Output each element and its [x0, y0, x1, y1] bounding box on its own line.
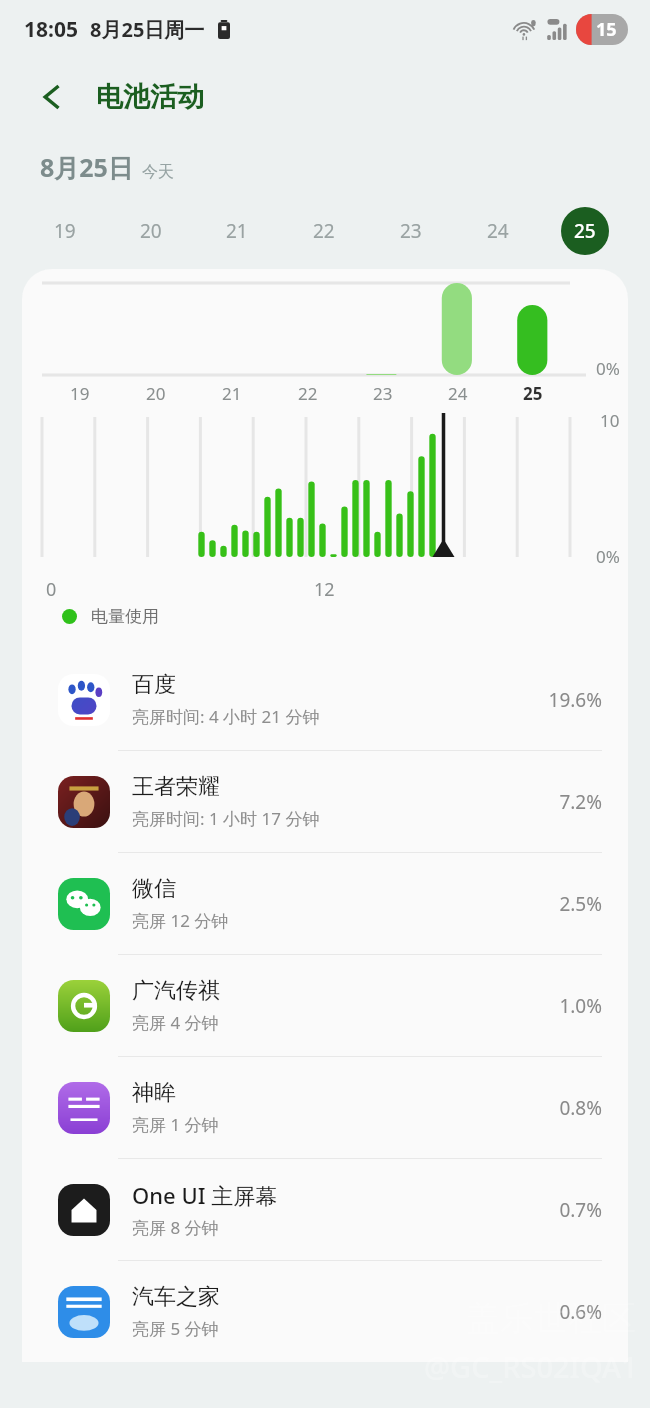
staticText: 21 — [222, 382, 242, 405]
staticText: 18:05 — [24, 15, 78, 44]
staticText: 22 — [298, 382, 318, 405]
staticText: 亮屏 1 分钟 — [132, 1113, 219, 1136]
staticText: 百度 — [132, 671, 176, 699]
staticText: 20 — [140, 218, 162, 244]
button[interactable]: 24 — [454, 204, 541, 258]
staticText: 0.7% — [559, 1197, 602, 1223]
staticText: 10 — [600, 409, 620, 432]
staticText: 电量使用 — [91, 606, 159, 627]
staticText: 广汽传祺 — [132, 977, 220, 1005]
staticText: 亮屏 5 分钟 — [132, 1317, 219, 1340]
button[interactable]: 广汽传祺 — [22, 955, 628, 1056]
staticText: 19.6% — [548, 687, 602, 713]
button[interactable]: 20 — [108, 204, 194, 258]
staticText: 20 — [146, 382, 166, 405]
button[interactable]: 汽车之家 — [22, 1261, 628, 1362]
staticText: 0.8% — [559, 1095, 602, 1121]
button[interactable]: 21 — [194, 204, 280, 258]
button[interactable]: 微信 — [22, 853, 628, 954]
staticText: 亮屏 8 分钟 — [132, 1216, 219, 1239]
staticText: 电池活动 — [96, 80, 204, 114]
staticText: 24 — [487, 218, 509, 244]
staticText: 王者荣耀 — [132, 773, 220, 801]
staticText: 25 — [523, 382, 543, 405]
staticText: 25 — [574, 218, 596, 244]
staticText: 1.0% — [559, 993, 602, 1019]
staticText: 亮屏 4 分钟 — [132, 1011, 219, 1034]
staticText: 12 — [314, 577, 335, 602]
staticText: 0% — [596, 545, 620, 568]
staticText: 汽车之家 — [132, 1283, 220, 1311]
staticText: 亮屏时间: 1 小时 17 分钟 — [132, 807, 320, 830]
staticText: 24 — [448, 382, 468, 405]
staticText: 7.2% — [559, 789, 602, 815]
button[interactable]: 25 — [541, 204, 628, 258]
staticText: One UI 主屏幕 — [132, 1180, 278, 1210]
staticText: 19 — [70, 382, 90, 405]
staticText: 0.6% — [559, 1299, 602, 1325]
staticText: 15 — [596, 17, 617, 42]
button[interactable]: Back — [30, 74, 76, 120]
staticText: 2.5% — [559, 891, 602, 917]
staticText: 23 — [373, 382, 393, 405]
button[interactable]: 22 — [280, 204, 367, 258]
staticText: 8月25日周一 — [90, 16, 205, 43]
staticText: 亮屏 12 分钟 — [132, 909, 229, 932]
staticText: @GC_RS02IQA1 — [424, 1347, 638, 1386]
button[interactable]: 王者荣耀 — [22, 751, 628, 852]
staticText: 盖乐世社区 — [466, 1297, 636, 1340]
staticText: 0 — [46, 577, 57, 602]
button[interactable]: 神眸 — [22, 1057, 628, 1158]
staticText: 8月25日 — [40, 150, 133, 184]
staticText: 亮屏时间: 4 小时 21 分钟 — [132, 705, 320, 728]
staticText: 23 — [400, 218, 422, 244]
staticText: 今天 — [142, 162, 174, 182]
staticText: 神眸 — [132, 1079, 176, 1107]
staticText: 微信 — [132, 875, 176, 903]
staticText: 19 — [54, 218, 76, 244]
staticText: 22 — [313, 218, 335, 244]
staticText: 0% — [596, 357, 620, 380]
staticText: 21 — [226, 218, 248, 244]
button[interactable]: 百度 — [22, 649, 628, 750]
button[interactable]: 23 — [367, 204, 454, 258]
button[interactable]: One UI 主屏幕 — [22, 1159, 628, 1260]
button[interactable]: 19 — [22, 204, 108, 258]
